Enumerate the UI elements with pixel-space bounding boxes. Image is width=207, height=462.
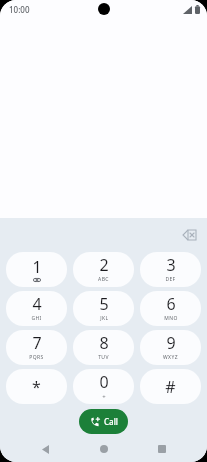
button[interactable]: Recent apps	[148, 437, 176, 461]
staticText: PQRS	[29, 354, 44, 361]
staticText: 0	[99, 371, 109, 393]
button[interactable]: 1	[6, 252, 67, 287]
staticText: 4	[32, 293, 42, 315]
staticText: ABC	[98, 276, 109, 283]
button[interactable]: Backspace	[177, 223, 201, 247]
button[interactable]: #	[140, 369, 201, 404]
button[interactable]: 7	[6, 330, 67, 365]
staticText: 9	[166, 332, 176, 354]
button[interactable]: 0	[73, 369, 134, 404]
staticText: JKL	[100, 315, 109, 322]
staticText: 3	[166, 254, 176, 276]
button[interactable]: 2	[73, 252, 134, 287]
staticText: MNO	[164, 315, 178, 322]
button[interactable]: 3	[140, 252, 201, 287]
staticText: *	[32, 376, 41, 398]
staticText: WXYZ	[163, 354, 178, 361]
button[interactable]: 5	[73, 291, 134, 326]
staticText: GHI	[31, 315, 42, 322]
button[interactable]: 8	[73, 330, 134, 365]
staticText: DEF	[165, 276, 176, 283]
staticText: 2	[99, 254, 109, 276]
staticText: +	[102, 393, 106, 401]
button[interactable]: *	[6, 369, 67, 404]
staticText: #	[165, 376, 176, 398]
button[interactable]: Home	[90, 437, 118, 461]
staticText: 6	[166, 293, 176, 315]
staticText: 8	[99, 332, 109, 354]
staticText: TUV	[98, 354, 109, 361]
button[interactable]: Back	[31, 437, 59, 461]
button[interactable]: 9	[140, 330, 201, 365]
staticText: Call	[104, 416, 118, 427]
staticText: 5	[99, 293, 109, 315]
button[interactable]: 6	[140, 291, 201, 326]
staticText: 7	[32, 332, 42, 354]
button[interactable]: 4	[6, 291, 67, 326]
button[interactable]: Call	[79, 409, 128, 434]
staticText: 10:00	[9, 4, 30, 15]
staticText: 1	[32, 256, 42, 278]
